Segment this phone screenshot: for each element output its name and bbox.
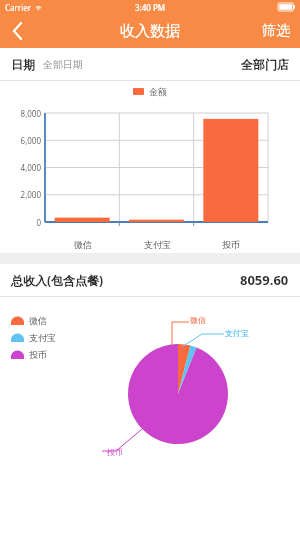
button[interactable]: 全部门店 [241,57,289,72]
staticText: 0 [0,217,41,228]
staticText: 8059.60 [240,271,289,289]
staticText: 投币 [222,239,240,250]
staticText: 2,000 [0,189,41,200]
staticText: 投币 [107,447,123,457]
button[interactable]: 微信 [11,315,47,326]
staticText: 4,000 [0,162,41,173]
staticText: 6,000 [0,135,41,146]
staticText: 8,000 [0,108,41,119]
staticText: 日期 [11,57,35,72]
staticText: 总收入(包含点餐) [11,272,104,288]
staticText: 支付宝 [144,239,171,250]
staticText: 微信 [74,239,92,250]
staticText: 支付宝 [29,332,56,343]
staticText: 收入数据 [120,22,180,41]
button[interactable]: 日期 [11,57,83,72]
button[interactable]: 筛选 [252,14,300,48]
staticText: 3:40 PM [135,2,166,13]
staticText: 微信 [190,315,206,325]
button[interactable]: 支付宝 [11,332,56,343]
staticText: 全部门店 [241,57,289,72]
staticText: 全部日期 [43,58,83,71]
staticText: 支付宝 [225,328,249,338]
staticText: 金额 [149,86,167,97]
staticText: 筛选 [262,22,290,40]
staticText: 投币 [29,349,47,360]
staticText: Carrier [5,2,32,13]
button[interactable]: Back [0,14,34,48]
button[interactable]: 总收入(包含点餐) [0,264,300,296]
staticText: 微信 [29,315,47,326]
button[interactable]: 投币 [11,349,47,360]
